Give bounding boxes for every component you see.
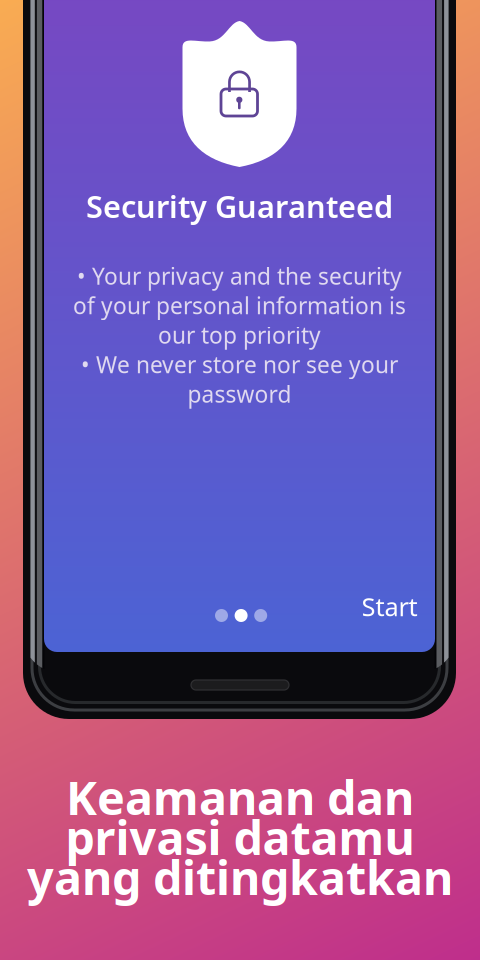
- staticText: our top priority: [158, 320, 321, 350]
- button[interactable]: Start: [337, 589, 417, 623]
- staticText: Security Guaranteed: [86, 186, 393, 226]
- staticText: of your personal information is: [73, 290, 406, 320]
- staticText: Keamanan dan: [66, 766, 414, 828]
- staticText: password: [187, 379, 291, 409]
- staticText: yang ditingkatkan: [27, 846, 453, 908]
- staticText: • We never store nor see your: [81, 349, 398, 379]
- staticText: privasi datamu: [65, 806, 414, 868]
- staticText: Start: [361, 590, 417, 623]
- staticText: • Your privacy and the security: [77, 261, 402, 291]
